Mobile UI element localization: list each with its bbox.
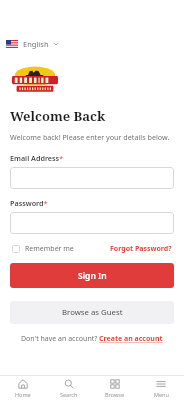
staticText: Sign In	[78, 270, 107, 282]
button[interactable]: Browse as Guest	[10, 301, 174, 324]
button[interactable]: Forgot Password?	[108, 242, 174, 256]
staticText: Email Address*	[10, 153, 64, 163]
staticText: Don't have an account? Create an account	[21, 334, 163, 344]
staticText: Welcome back! Please enter your details …	[10, 132, 170, 142]
button[interactable]: Menu	[138, 376, 184, 400]
staticText: Browse	[105, 391, 125, 398]
button[interactable]	[10, 167, 174, 189]
staticText: Browse as Guest	[62, 307, 123, 318]
staticText: Search	[60, 391, 78, 398]
button[interactable]: English	[5, 36, 60, 52]
button[interactable]	[10, 212, 174, 234]
staticText: Welcome Back	[10, 107, 106, 125]
staticText: Menu	[154, 391, 169, 398]
staticText: Password*	[10, 198, 48, 208]
button[interactable]: Home	[0, 376, 46, 400]
staticText: Home	[15, 391, 31, 398]
staticText: English	[23, 39, 49, 49]
staticText: Remember me	[25, 244, 74, 254]
button[interactable]: Don't have an account? Create an account	[10, 334, 174, 344]
button[interactable]: Browse	[92, 376, 138, 400]
button[interactable]: Search	[46, 376, 92, 400]
button[interactable]: Sign In	[10, 263, 174, 288]
button[interactable]: Remember me	[10, 242, 76, 256]
staticText: Forgot Password?	[110, 244, 172, 254]
